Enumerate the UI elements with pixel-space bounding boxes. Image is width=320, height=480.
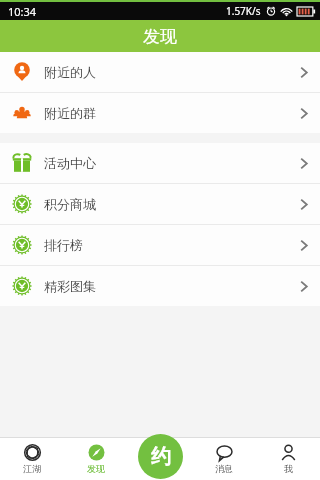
staticText: 精彩图集: [44, 278, 96, 294]
button[interactable]: 精彩图集: [0, 266, 320, 306]
button[interactable]: 附近的群: [0, 93, 320, 133]
staticText: 10:34: [8, 4, 37, 19]
button[interactable]: 我: [256, 438, 320, 480]
staticText: 消息: [215, 463, 233, 474]
staticText: 排行榜: [44, 237, 83, 253]
staticText: 发现: [143, 26, 177, 47]
button[interactable]: 江湖: [0, 438, 64, 480]
button[interactable]: 发现: [64, 438, 128, 480]
button[interactable]: 消息: [192, 438, 256, 480]
staticText: 附近的人: [44, 64, 96, 80]
button[interactable]: 积分商城: [0, 184, 320, 224]
staticText: 发现: [87, 463, 105, 474]
button[interactable]: 活动中心: [0, 143, 320, 183]
staticText: 附近的群: [44, 105, 96, 121]
staticText: 积分商城: [44, 196, 96, 212]
staticText: 活动中心: [44, 155, 96, 171]
staticText: 约: [151, 444, 171, 469]
button[interactable]: 约: [138, 434, 183, 479]
staticText: 我: [284, 463, 293, 474]
staticText: 1.57K/s: [226, 4, 261, 18]
button[interactable]: 排行榜: [0, 225, 320, 265]
button[interactable]: 附近的人: [0, 52, 320, 92]
staticText: 江湖: [23, 463, 41, 474]
